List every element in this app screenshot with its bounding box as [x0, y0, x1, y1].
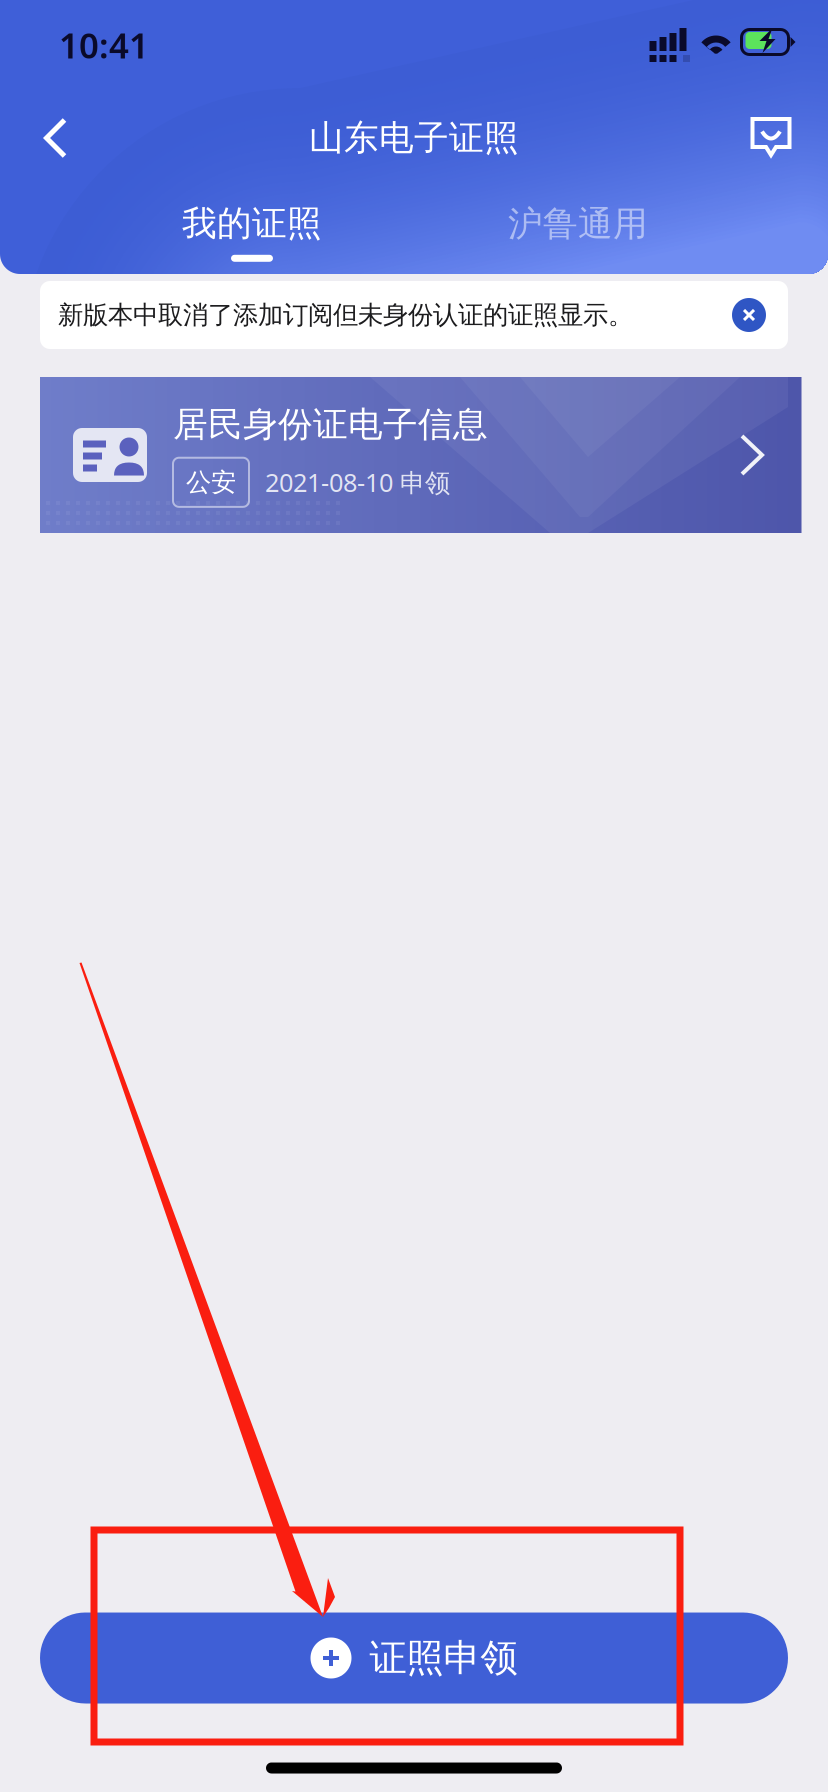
staticText: 沪鲁通用: [508, 203, 648, 245]
staticText: 10:41: [59, 22, 149, 68]
staticText: 居民身份证电子信息: [173, 403, 488, 446]
button[interactable]: 我的证照: [122, 187, 382, 277]
button[interactable]: 证照申领: [40, 1612, 788, 1703]
staticText: 我的证照: [182, 202, 322, 245]
button[interactable]: 沪鲁通用: [448, 187, 708, 277]
button[interactable]: Dismiss notice: [732, 298, 766, 332]
staticText: 证照申领: [369, 1635, 517, 1681]
staticText: 新版本中取消了添加订阅但未身份认证的证照显示。: [58, 299, 633, 330]
button[interactable]: 居民身份证电子信息: [40, 377, 788, 533]
staticText: 山东电子证照: [309, 117, 519, 159]
button[interactable]: Messages: [735, 101, 807, 173]
staticText: 公安: [186, 467, 236, 498]
staticText: 2021-08-10 申领: [265, 465, 450, 499]
button[interactable]: Back: [20, 102, 92, 174]
